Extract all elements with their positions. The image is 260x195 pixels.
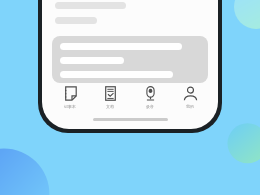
button[interactable]: 文档 [92, 84, 128, 111]
staticText: 文档 [106, 104, 114, 109]
button[interactable]: 记事本 [52, 84, 88, 111]
staticText: 录音 [146, 104, 154, 109]
staticText: 记事本 [64, 104, 76, 109]
staticText: 我的 [186, 104, 194, 109]
button[interactable]: 录音 [132, 84, 168, 111]
button[interactable] [52, 36, 208, 83]
button[interactable]: 我的 [172, 84, 208, 111]
